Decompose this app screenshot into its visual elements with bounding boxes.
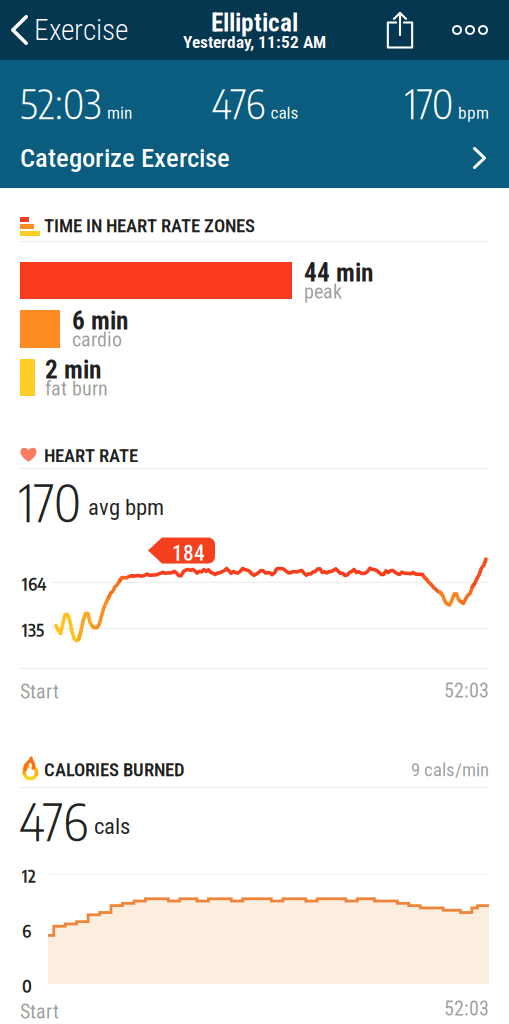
staticText: Start [20,1000,59,1023]
staticText: fat burn [45,377,108,400]
staticText: 2 min [45,355,101,385]
staticText: 170 [19,470,81,533]
staticText: 52:03 [444,679,489,702]
staticText: Yesterday, 11:52 AM [183,32,326,52]
staticText: 0 [22,975,32,997]
staticText: bpm [458,103,489,123]
staticText: 9 cals/min [411,759,489,781]
staticText: Elliptical [211,8,298,38]
staticText: 476 [211,78,265,128]
button[interactable]: Share [374,0,426,60]
staticText: 6 min [72,306,128,336]
button[interactable]: More options [443,0,497,60]
staticText: HEART RATE [44,445,138,467]
staticText: min [107,103,132,123]
staticText: 52:03 [20,78,102,128]
staticText: 44 min [304,258,373,288]
staticText: 164 [22,573,46,595]
button[interactable]: Exercise [0,0,138,60]
button[interactable]: Categorize Exercise [0,128,509,188]
staticText: 12 [22,865,36,887]
staticText: TIME IN HEART RATE ZONES [44,215,255,237]
staticText: CALORIES BURNED [44,759,185,781]
staticText: cardio [72,328,122,351]
staticText: 170 [405,78,453,128]
staticText: 52:03 [444,997,489,1020]
staticText: cals [270,103,298,123]
staticText: Start [20,680,59,703]
staticText: peak [304,280,342,303]
staticText: Exercise [34,13,128,47]
staticText: Categorize Exercise [20,142,230,174]
staticText: 135 [22,619,44,641]
staticText: 476 [19,789,88,852]
staticText: 6 [22,920,31,942]
staticText: avg bpm [88,494,164,521]
staticText: cals [94,813,130,840]
staticText: 184 [172,541,205,566]
